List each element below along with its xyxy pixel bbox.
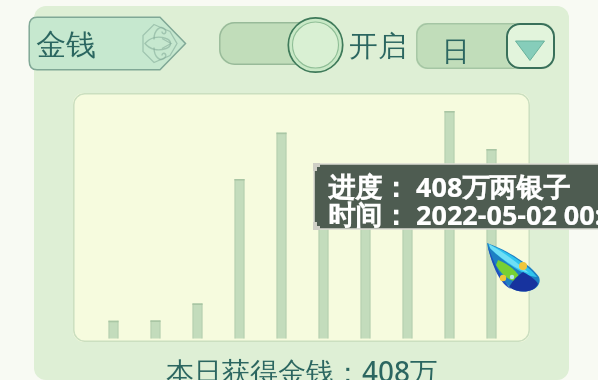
staticText: 开启	[349, 28, 407, 65]
staticText: 日	[442, 34, 470, 69]
staticText: 进度： 408万两银子	[328, 168, 571, 205]
staticText: 本日获得金钱：408万	[166, 352, 439, 380]
button[interactable]: Toggle on	[219, 22, 320, 65]
staticText: 时间： 2022-05-02 00:0	[328, 196, 598, 233]
button[interactable]: 金钱	[28, 16, 187, 71]
other: Cursor	[485, 241, 543, 295]
button[interactable]: Open dropdown	[506, 23, 555, 69]
button[interactable]: 日	[416, 23, 554, 69]
staticText: 金钱	[36, 26, 96, 64]
